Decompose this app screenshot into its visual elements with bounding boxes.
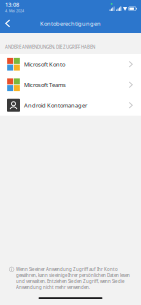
staticText: 4. Mai 2024 (5, 8, 24, 13)
staticText: 13:08 (5, 1, 19, 8)
staticText: ANDERE ANWENDUNGEN, DIE ZUGRIFF HABEN (5, 44, 95, 50)
button[interactable]: Android Kontomanager (0, 95, 141, 115)
staticText: Microsoft Teams (24, 81, 66, 89)
button[interactable]: Microsoft Teams (0, 74, 141, 95)
button[interactable]: Microsoft Konto (0, 54, 141, 74)
staticText: ⓘ (9, 266, 14, 273)
staticText: Android Kontomanager (24, 101, 87, 109)
staticText: Kontoberechtigungen (40, 20, 101, 27)
staticText: Wenn Sie einer Anwendung Zugriff auf Ihr… (16, 266, 130, 290)
staticText: Microsoft Konto (24, 60, 65, 68)
button[interactable]: Zurück (0, 14, 18, 33)
